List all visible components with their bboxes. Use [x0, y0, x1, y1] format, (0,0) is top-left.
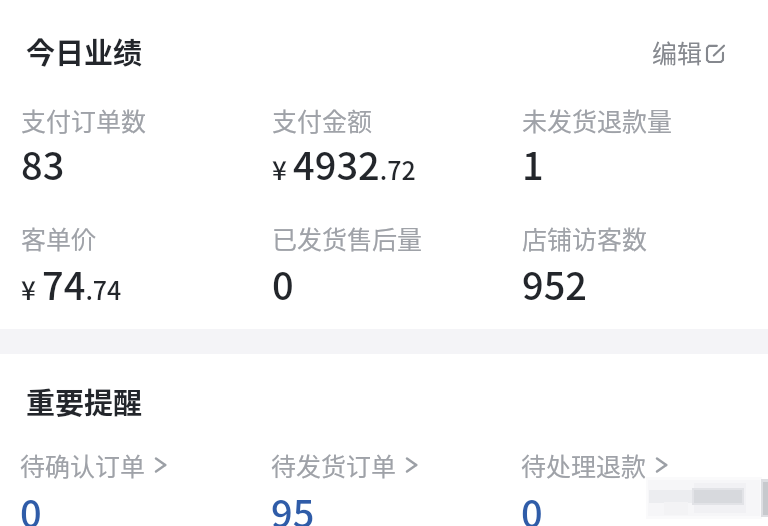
staticText: 客单价 [21, 220, 97, 256]
staticText: 83 [21, 136, 65, 191]
button[interactable]: 待确认订单 [8, 437, 244, 526]
button[interactable]: 编辑 [640, 24, 735, 80]
staticText: 0 [20, 484, 42, 526]
staticText: ¥ 4932.72 [272, 136, 416, 191]
staticText: 0 [521, 484, 543, 526]
staticText: 1 [522, 136, 544, 191]
staticText: ¥ 74.74 [21, 256, 122, 311]
button[interactable]: 待处理退款 [509, 437, 745, 526]
staticText: 店铺访客数 [522, 220, 648, 256]
staticText: 重要提醒 [26, 380, 143, 422]
staticText: 已发货售后量 [272, 220, 423, 256]
button[interactable]: 待发货订单 [259, 437, 495, 526]
staticText: 95 [271, 484, 315, 526]
staticText: 952 [522, 256, 587, 311]
staticText: 支付金额 [272, 102, 373, 138]
staticText: 未发货退款量 [522, 102, 673, 138]
staticText: 支付订单数 [21, 102, 147, 138]
staticText: 待发货订单 [271, 447, 397, 483]
staticText: 今日业绩 [26, 30, 143, 72]
staticText: 待确认订单 [20, 447, 146, 483]
staticText: 0 [272, 256, 294, 311]
staticText: 编辑 [652, 34, 703, 70]
staticText: 待处理退款 [521, 447, 647, 483]
other: 编辑 [707, 45, 724, 62]
